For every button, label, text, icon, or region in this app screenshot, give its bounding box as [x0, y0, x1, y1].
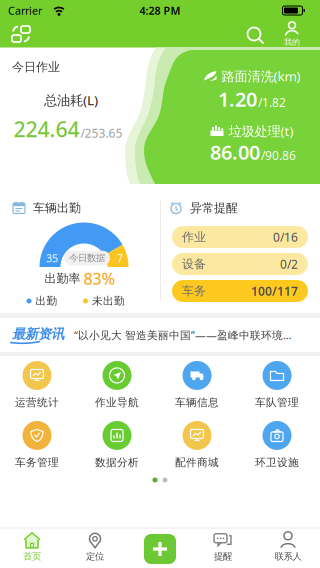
staticText: /90.86 — [261, 147, 296, 163]
button[interactable]: 定位 — [86, 532, 104, 562]
staticText: 设备 — [182, 257, 206, 271]
staticText: 车辆出勤 — [33, 201, 81, 215]
staticText: 未出勤 — [92, 294, 125, 307]
staticText: 车务管理 — [15, 456, 59, 469]
button[interactable]: 环卫设施 — [255, 421, 299, 469]
staticText: 100/117 — [251, 283, 298, 299]
staticText: 定位 — [86, 551, 104, 562]
staticText: “以小见大 智造美丽中国”——盈峰中联环境… — [74, 328, 291, 342]
button[interactable]: 运营统计 — [15, 361, 59, 409]
staticText: 首页 — [23, 551, 41, 562]
staticText: 今日作业 — [12, 60, 60, 74]
button[interactable]: 作业导航 — [95, 361, 139, 409]
staticText: 异常提醒 — [190, 201, 238, 215]
staticText: 数据分析 — [95, 456, 139, 469]
staticText: 出勤 — [35, 294, 57, 307]
staticText: 作业导航 — [95, 396, 139, 409]
staticText: 提醒 — [214, 551, 232, 562]
staticText: 环卫设施 — [255, 456, 299, 469]
button[interactable]: 数据分析 — [95, 421, 139, 469]
staticText: 我的 — [284, 37, 300, 47]
button[interactable]: 添加 — [144, 534, 176, 564]
staticText: 86.00 — [210, 139, 260, 165]
button[interactable]: 最新资讯 — [0, 318, 320, 352]
button[interactable]: 车务管理 — [15, 421, 59, 469]
staticText: 车队管理 — [255, 396, 299, 409]
button[interactable]: 首页 — [23, 532, 41, 562]
button[interactable]: 配件商城 — [175, 421, 219, 469]
staticText: /1.82 — [258, 94, 286, 110]
staticText: 车务 — [182, 284, 206, 298]
button[interactable]: 搜索 — [242, 22, 268, 48]
staticText: 最新资讯 — [12, 326, 64, 342]
staticText: 路面清洗(km) — [221, 67, 300, 85]
staticText: 今日数据 — [69, 252, 105, 264]
staticText: 运营统计 — [15, 396, 59, 409]
staticText: 车辆信息 — [175, 396, 219, 409]
staticText: 配件商城 — [175, 456, 219, 469]
staticText: 7 — [117, 251, 123, 265]
staticText: 作业 — [182, 230, 206, 244]
button[interactable]: 我的 — [284, 21, 300, 47]
staticText: Carrier — [8, 3, 42, 18]
staticText: 224.64 — [13, 115, 79, 143]
staticText: 总油耗(L) — [44, 91, 98, 109]
staticText: 35 — [46, 251, 58, 265]
staticText: 1.20 — [218, 86, 257, 112]
staticText: 0/16 — [273, 229, 298, 245]
staticText: 0/2 — [280, 256, 298, 272]
button[interactable]: 联系人 — [274, 532, 301, 562]
button[interactable]: 车队管理 — [255, 361, 299, 409]
staticText: 83% — [83, 268, 115, 289]
staticText: 垃圾处理(t) — [228, 122, 293, 140]
staticText: 联系人 — [274, 551, 301, 562]
staticText: /253.65 — [80, 125, 122, 141]
staticText: 4:28 PM — [139, 3, 180, 18]
staticText: 出勤率 — [44, 271, 80, 286]
button[interactable]: 切换 — [7, 20, 35, 48]
button[interactable]: 提醒 — [214, 532, 232, 562]
button[interactable]: 车辆信息 — [175, 361, 219, 409]
